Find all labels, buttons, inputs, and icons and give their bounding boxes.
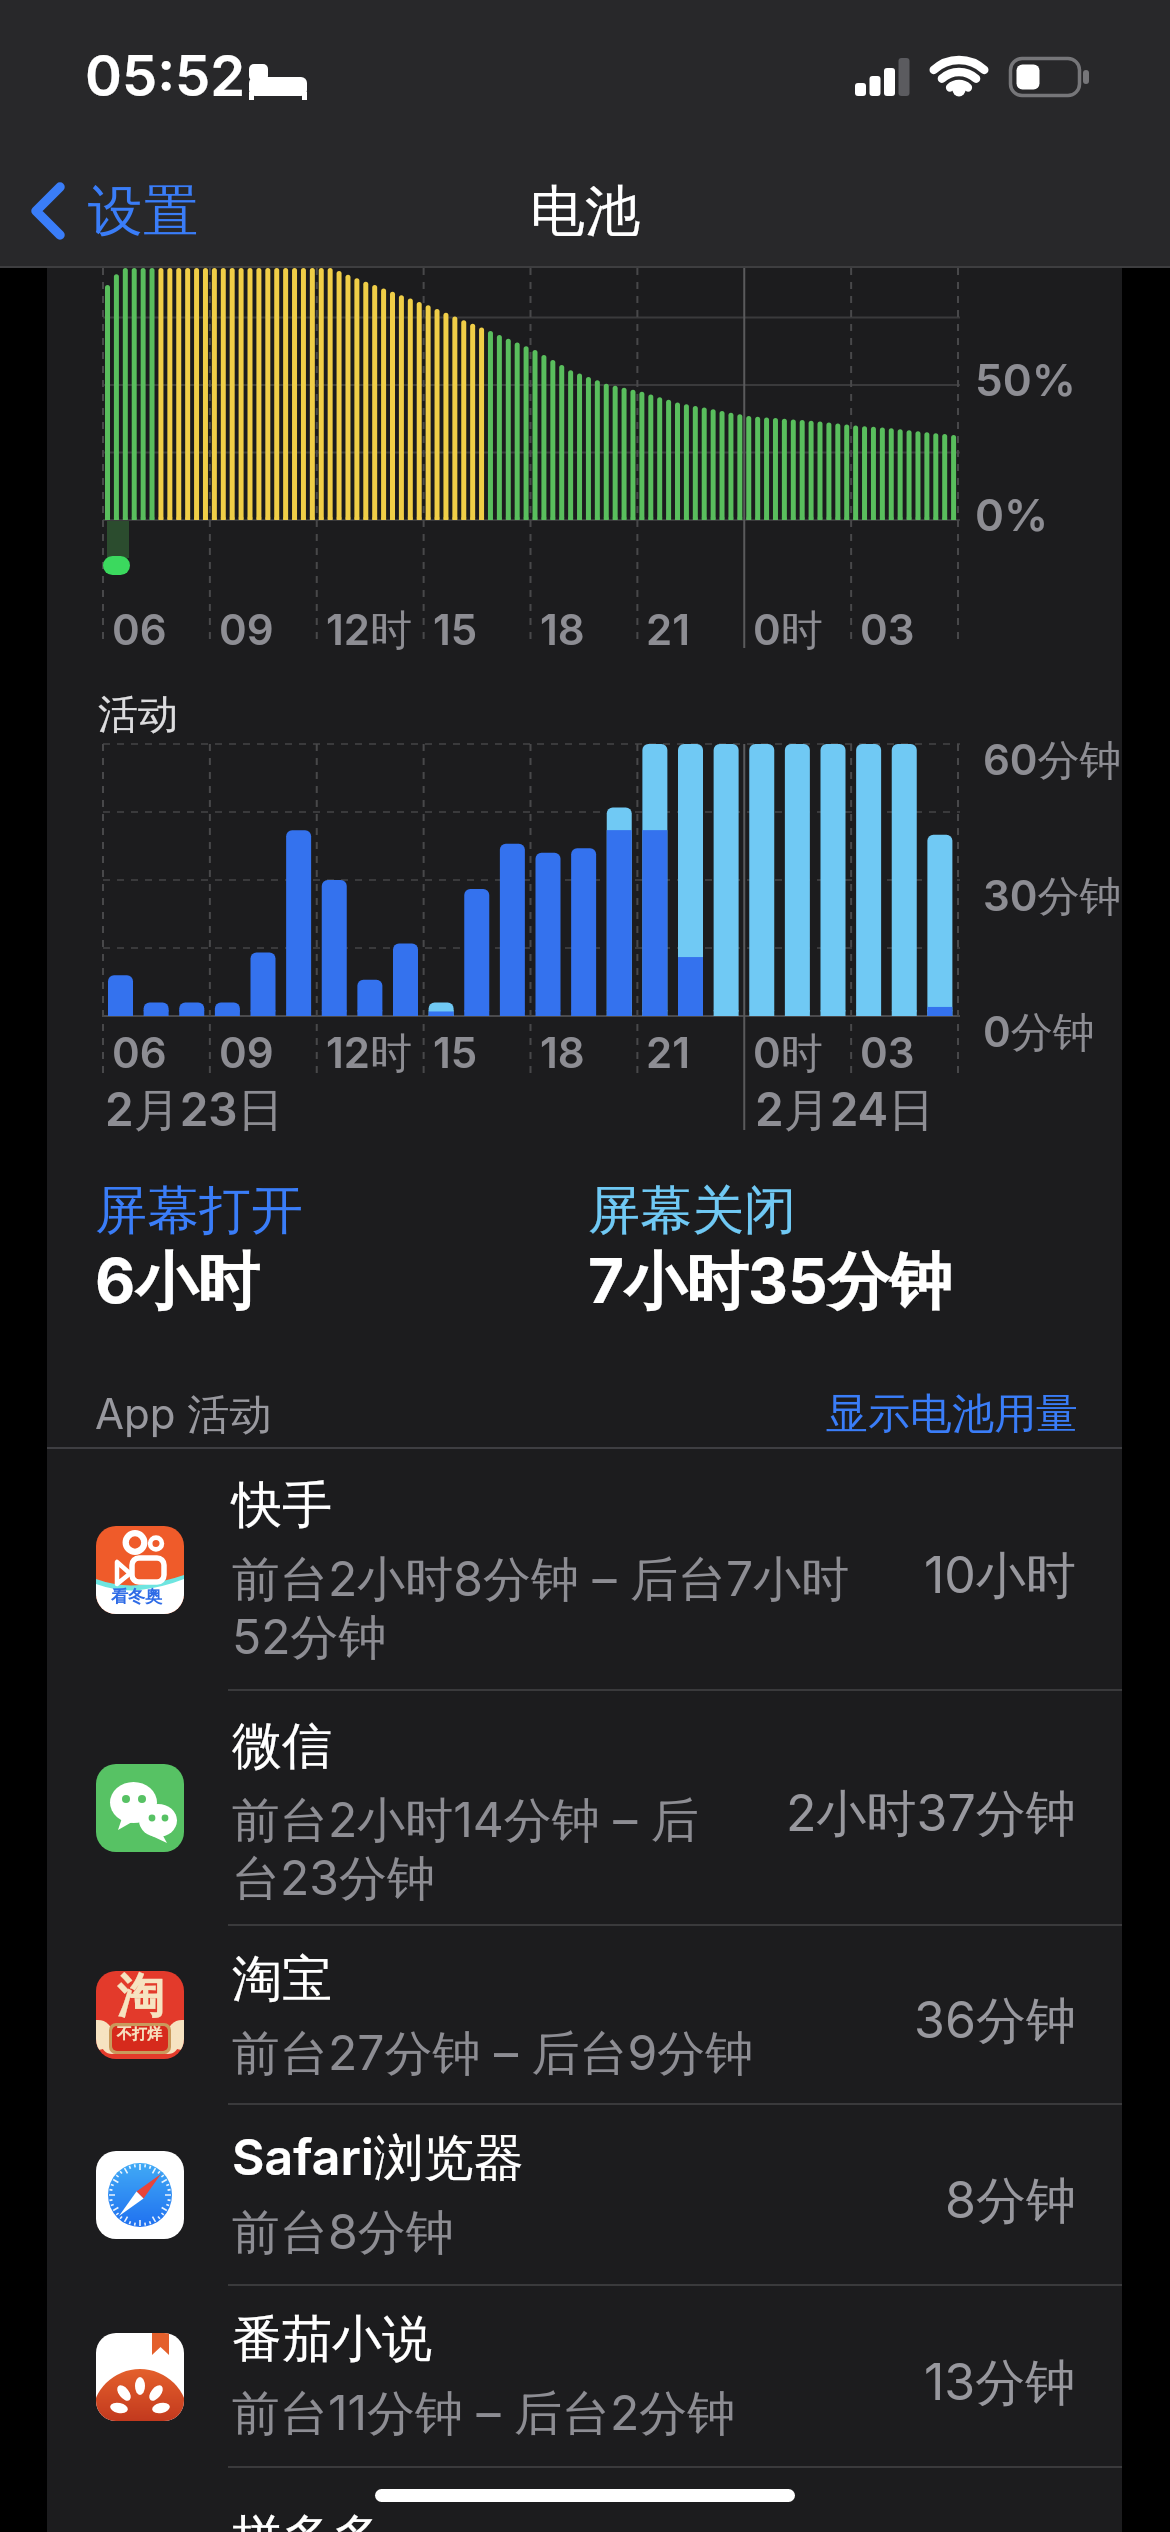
button[interactable] — [0, 2285, 1170, 2467]
staticText: 前台8分钟 — [232, 2202, 454, 2263]
staticText: 15 — [433, 1027, 478, 1078]
staticText: 番茄小说 — [232, 2308, 432, 2371]
staticText: App 活动 — [95, 1388, 272, 1441]
staticText: 不打烊 — [117, 2025, 162, 2044]
staticText: 前台27分钟 – 后台9分钟 — [232, 2023, 754, 2084]
staticText: 显示电池用量 — [826, 1388, 1078, 1441]
staticText: 屏幕关闭 — [588, 1178, 796, 1244]
staticText: 10小时 — [924, 1545, 1076, 1608]
staticText: 15 — [433, 604, 478, 655]
staticText: 7小时35分钟 — [588, 1243, 952, 1321]
staticText: 活动 — [98, 689, 178, 739]
staticText: 台23分钟 — [232, 1848, 435, 1909]
staticText: 看冬奥 — [111, 1586, 162, 1607]
staticText: 0时 — [753, 1027, 823, 1080]
staticText: 60分钟 — [983, 734, 1122, 787]
staticText: 淘 — [117, 1971, 164, 2026]
staticText: 03 — [860, 604, 915, 655]
button[interactable] — [20, 160, 250, 260]
staticText: 06 — [112, 604, 167, 655]
staticText: 6小时 — [95, 1243, 260, 1321]
button[interactable] — [0, 1690, 1170, 1925]
staticText: 设置 — [88, 177, 198, 246]
staticText: 0% — [975, 488, 1049, 541]
staticText: 拼多多 — [232, 2507, 382, 2532]
staticText: 淘宝 — [232, 1948, 332, 2011]
button[interactable]: 看冬奥 — [0, 1449, 1170, 1690]
staticText: 09 — [219, 604, 274, 655]
staticText: 0时 — [753, 604, 823, 657]
staticText: 36分钟 — [914, 1990, 1076, 2053]
staticText: 50% — [975, 353, 1076, 406]
staticText: 21 — [646, 1027, 690, 1078]
staticText: Safari浏览器 — [232, 2127, 524, 2190]
staticText: 52分钟 — [232, 1607, 387, 1668]
staticText: 快手 — [232, 1474, 332, 1537]
button[interactable] — [0, 2104, 1170, 2285]
staticText: 18 — [540, 604, 585, 655]
staticText: 21 — [646, 604, 690, 655]
staticText: 09 — [219, 1027, 274, 1078]
staticText: 05:52 — [85, 42, 246, 110]
staticText: 18 — [540, 1027, 585, 1078]
staticText: 30分钟 — [983, 870, 1122, 923]
staticText: 12时 — [326, 604, 412, 657]
button[interactable]: 淘 — [0, 1925, 1170, 2104]
staticText: 2小时37分钟 — [786, 1783, 1076, 1846]
staticText: 13分钟 — [924, 2352, 1076, 2415]
staticText: 0分钟 — [983, 1006, 1095, 1059]
staticText: 12时 — [326, 1027, 412, 1080]
staticText: 2月23日 — [105, 1081, 284, 1139]
staticText: 06 — [112, 1027, 167, 1078]
staticText: 2月24日 — [755, 1081, 935, 1139]
button[interactable]: 显示电池用量 — [700, 1388, 1078, 1441]
staticText: 电池 — [530, 177, 640, 246]
staticText: 前台2小时14分钟 – 后 — [232, 1790, 699, 1851]
staticText: 前台2小时8分钟 – 后台7小时 — [232, 1549, 850, 1610]
staticText: 前台11分钟 – 后台2分钟 — [232, 2383, 736, 2444]
staticText: 微信 — [232, 1715, 332, 1778]
staticText: 8分钟 — [945, 2170, 1076, 2233]
staticText: 屏幕打开 — [95, 1178, 303, 1244]
staticText: 03 — [860, 1027, 915, 1078]
